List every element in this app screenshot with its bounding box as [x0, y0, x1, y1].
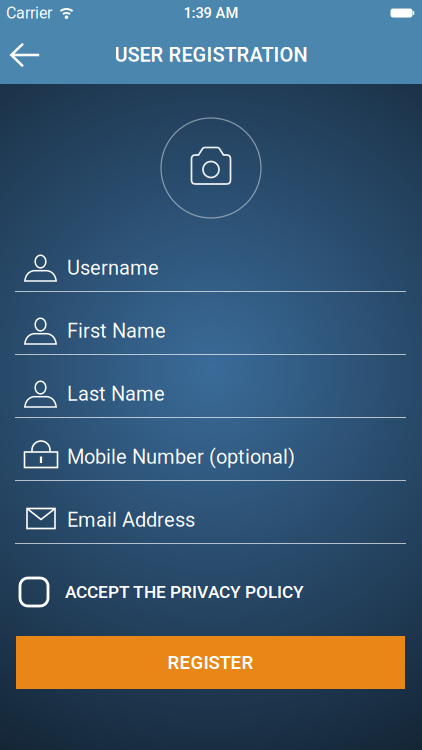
staticText: 1:39 AM: [183, 5, 238, 21]
staticText: First Name: [67, 320, 166, 342]
staticText: Username: [67, 257, 159, 279]
staticText: Last Name: [67, 383, 165, 405]
staticText: REGISTER: [167, 652, 253, 673]
staticText: ACCEPT THE PRIVACY POLICY: [65, 582, 304, 602]
staticText: USER REGISTRATION: [114, 44, 307, 66]
staticText: Mobile Number (optional): [67, 446, 295, 468]
staticText: Email Address: [67, 509, 195, 531]
staticText: Carrier: [6, 4, 52, 22]
